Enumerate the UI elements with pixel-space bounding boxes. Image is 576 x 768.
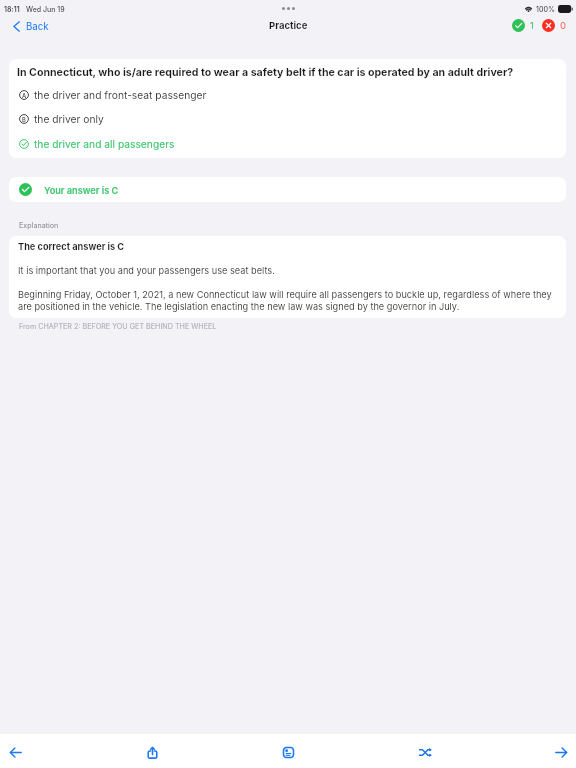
staticText: 1 bbox=[530, 20, 534, 31]
staticText: A bbox=[22, 92, 27, 99]
staticText: B bbox=[22, 116, 26, 123]
staticText: Wed Jun 19 bbox=[26, 5, 65, 13]
staticText: 0 bbox=[560, 20, 566, 31]
button[interactable]: Share bbox=[135, 735, 169, 768]
button[interactable]: Next bbox=[544, 735, 576, 768]
button[interactable]: 0 bbox=[542, 19, 566, 32]
button[interactable]: 1 bbox=[512, 19, 534, 32]
staticText: In Connecticut, who is/are required to w… bbox=[17, 66, 514, 79]
staticText: Beginning Friday, October 1, 2021, a new… bbox=[18, 289, 566, 312]
button[interactable]: the driver and all passengers bbox=[9, 134, 566, 154]
staticText: 100% bbox=[536, 5, 555, 13]
button[interactable]: Back bbox=[4, 16, 55, 37]
staticText: Explanation bbox=[19, 221, 59, 230]
button[interactable]: Your answer is C bbox=[9, 177, 566, 202]
staticText: the driver and front-seat passenger bbox=[34, 89, 207, 101]
button[interactable]: Notes bbox=[271, 735, 305, 768]
button[interactable]: B bbox=[9, 109, 566, 129]
staticText: Practice bbox=[269, 20, 308, 31]
button[interactable]: A bbox=[9, 85, 566, 105]
staticText: From CHAPTER 2: BEFORE YOU GET BEHIND TH… bbox=[19, 322, 217, 331]
staticText: Your answer is C bbox=[44, 185, 119, 196]
button[interactable]: Shuffle bbox=[408, 735, 442, 768]
staticText: The correct answer is C bbox=[18, 241, 125, 252]
staticText: It is important that you and your passen… bbox=[18, 265, 275, 276]
staticText: 18:11 bbox=[4, 5, 20, 13]
staticText: the driver only bbox=[34, 113, 104, 125]
button[interactable]: Previous bbox=[0, 735, 32, 768]
staticText: Back bbox=[26, 21, 49, 33]
staticText: the driver and all passengers bbox=[34, 138, 175, 150]
